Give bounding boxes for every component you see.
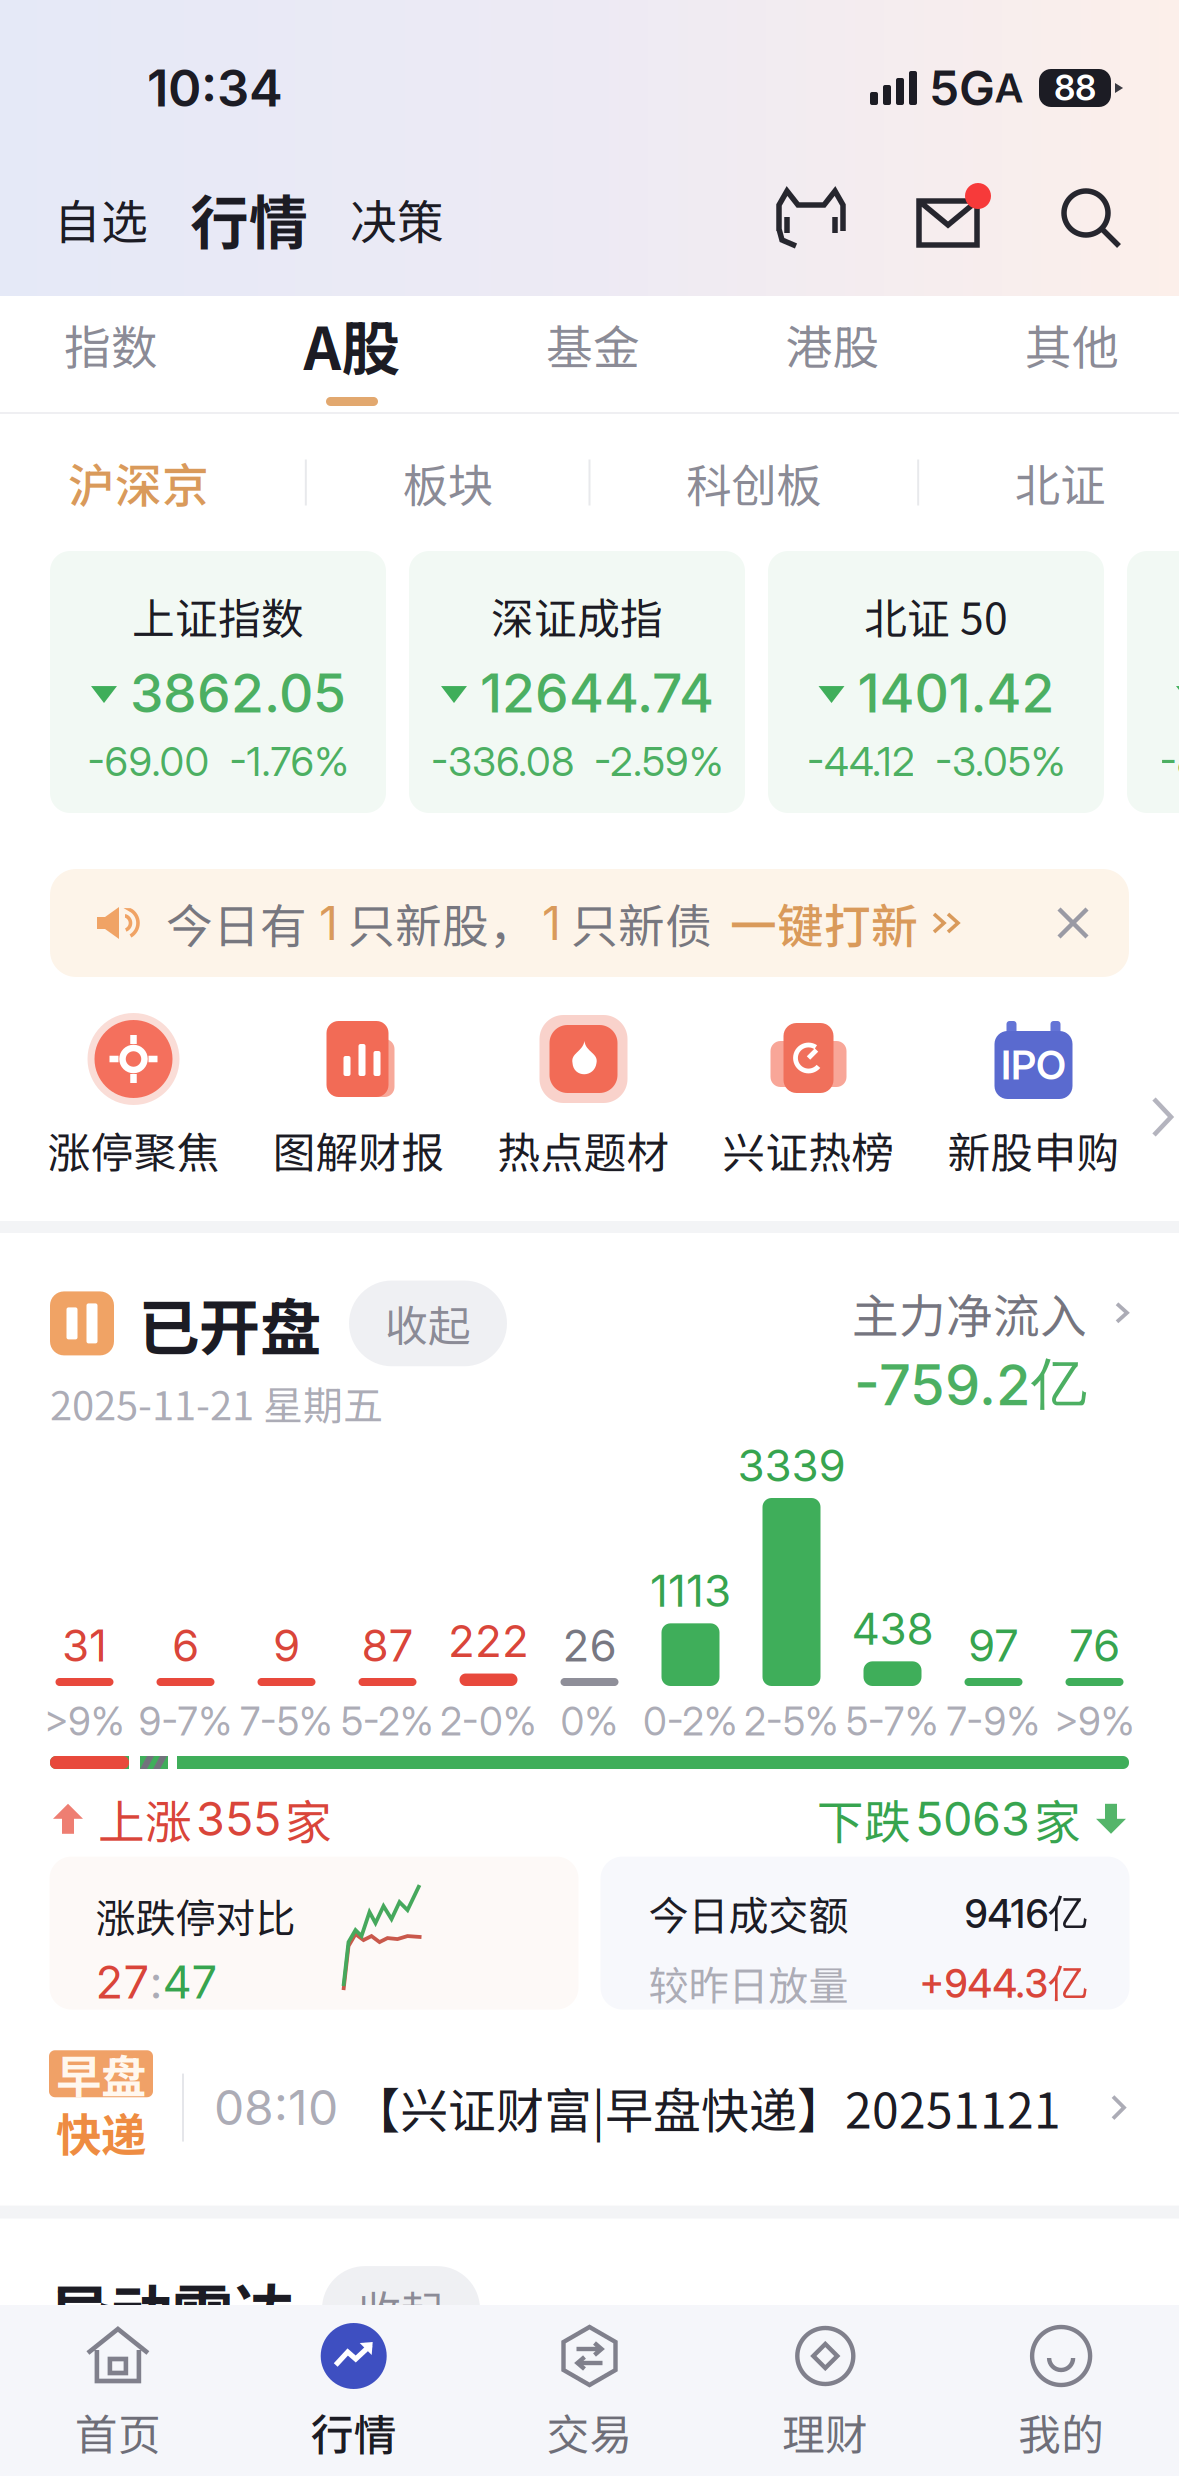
staticText: 2-5% [744, 1698, 839, 1745]
button[interactable]: 上证指数 [50, 551, 386, 813]
staticText: 26 [562, 1619, 616, 1672]
staticText: 沪深京 [68, 449, 209, 516]
staticText: >9% [1054, 1698, 1135, 1745]
button[interactable]: 兴证热榜 [696, 1013, 921, 1221]
button[interactable]: 主力净流入 [852, 1279, 1133, 1419]
staticText: 涨跌停对比 [95, 1887, 295, 1944]
staticText: 7-9% [946, 1698, 1040, 1745]
staticText: 12644.74 [480, 661, 714, 725]
button[interactable]: 行情 [236, 2305, 472, 2476]
staticText: 10:34 [147, 57, 283, 119]
staticText: -2.59% [594, 737, 723, 786]
staticText: 7-5% [240, 1698, 333, 1745]
button[interactable]: 客服 [773, 185, 849, 253]
staticText: +944.3亿 [919, 1959, 1087, 2007]
staticText: >9% [44, 1698, 125, 1745]
staticText: -88.42 [1159, 737, 1179, 786]
staticText: 行情 [311, 2401, 397, 2463]
button[interactable]: 理财 [707, 2305, 943, 2476]
button[interactable]: 我的 [943, 2305, 1179, 2476]
button[interactable]: IPO [921, 1013, 1146, 1221]
button[interactable]: 今日成交额 [600, 1857, 1129, 2010]
staticText: 1113 [650, 1564, 731, 1617]
staticText: 行情 [190, 176, 308, 261]
staticText: -69.00 [87, 737, 209, 786]
button[interactable]: 板块 [399, 432, 497, 533]
staticText: 27 [95, 1954, 149, 2009]
staticText: 9-7% [138, 1698, 232, 1745]
button[interactable]: 早盘 [0, 2010, 1179, 2206]
staticText: 港股 [785, 311, 879, 378]
staticText: 交易 [546, 2401, 632, 2463]
staticText: 家 [285, 1785, 332, 1853]
button[interactable]: A股 [295, 302, 408, 406]
staticText: 87 [361, 1619, 413, 1672]
staticText: 兴证热榜 [722, 1119, 894, 1181]
staticText: A [995, 64, 1023, 112]
button[interactable]: 其他 [1017, 311, 1127, 397]
staticText: 3862.05 [130, 661, 346, 725]
staticText: 北证 [1015, 450, 1105, 515]
button[interactable]: 深证成指 [409, 551, 745, 813]
staticText: 早盘 [56, 2041, 146, 2106]
staticText: 355 [196, 1791, 281, 1847]
button[interactable]: 图解财报 [246, 1013, 471, 1221]
button[interactable]: 行情 [156, 164, 342, 273]
staticText: 47 [162, 1954, 217, 2009]
staticText: IPO [1001, 1041, 1066, 1089]
button[interactable]: 创业板指 [1127, 551, 1179, 813]
staticText: 异动雷达 [50, 2265, 294, 2353]
staticText: 较昨日放量 [648, 1954, 848, 2012]
staticText: 决策 [350, 185, 444, 253]
staticText: -44.12 [807, 737, 915, 786]
staticText: 今日有 [166, 889, 307, 957]
button[interactable]: 科创板 [682, 432, 825, 533]
button[interactable]: 基金 [538, 311, 648, 397]
staticText: 222 [448, 1614, 529, 1667]
staticText: 只新股， [348, 889, 536, 957]
button[interactable]: 涨跌停对比 [49, 1857, 578, 2010]
staticText: 板块 [403, 450, 493, 515]
button[interactable]: 决策 [342, 167, 452, 271]
button[interactable]: 今日有 [50, 869, 1129, 977]
staticText: 已开盘 [138, 1279, 321, 1368]
staticText: 88 [1054, 67, 1096, 109]
staticText: 北证 50 [864, 585, 1008, 647]
button[interactable]: 更多 [1146, 1091, 1179, 1143]
staticText: 理财 [782, 2401, 868, 2463]
staticText: 我的 [1018, 2401, 1104, 2463]
staticText: 快递 [56, 2099, 146, 2165]
button[interactable]: 搜索 [991, 183, 1127, 255]
staticText: : [149, 1954, 162, 2009]
button[interactable]: 指数 [56, 311, 166, 397]
button[interactable]: 热点题材 [471, 1013, 696, 1221]
button[interactable]: 北证 50 [768, 551, 1104, 813]
button[interactable]: 首页 [0, 2305, 236, 2476]
button[interactable]: 港股 [777, 311, 887, 397]
staticText: 自选 [54, 185, 148, 253]
staticText: 1 [542, 895, 561, 951]
button[interactable]: 收起 [349, 1280, 507, 1366]
staticText: 科创板 [686, 450, 821, 515]
staticText: 涨停聚焦 [47, 1119, 219, 1181]
staticText: 08:10 [214, 2078, 338, 2137]
staticText: 基金 [546, 311, 640, 378]
staticText: 9416亿 [964, 1889, 1087, 1937]
staticText: 3339 [737, 1439, 845, 1492]
staticText: 0% [560, 1698, 618, 1745]
button[interactable]: 自选 [46, 167, 156, 271]
staticText: 0-2% [643, 1698, 738, 1745]
staticText: 6 [172, 1619, 199, 1672]
button[interactable]: 北证 [1011, 432, 1109, 533]
button[interactable]: 沪深京 [64, 431, 213, 534]
staticText: 家 [1034, 1785, 1081, 1853]
button[interactable]: 消息 [849, 183, 991, 255]
staticText: 5G [929, 59, 995, 117]
staticText: 1 [319, 895, 338, 951]
button[interactable]: 涨停聚焦 [21, 1013, 246, 1221]
staticText: A股 [303, 302, 400, 387]
button[interactable]: 交易 [472, 2305, 707, 2476]
staticText: 9 [273, 1619, 300, 1672]
staticText: 深证成指 [491, 585, 663, 647]
staticText: 5-7% [846, 1698, 939, 1745]
